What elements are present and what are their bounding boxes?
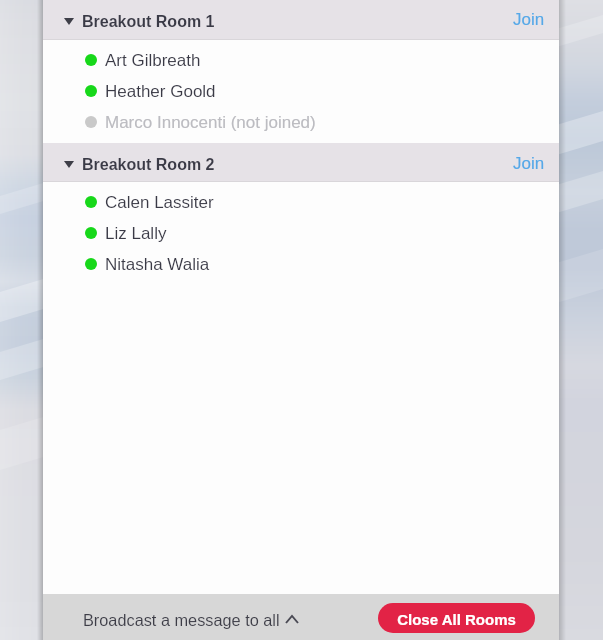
button[interactable]: Close All Rooms xyxy=(378,603,535,633)
staticText: Nitasha Walia xyxy=(105,255,210,274)
staticText: Breakout Room 1 xyxy=(82,13,215,31)
button[interactable]: Broadcast a message to all xyxy=(83,611,280,629)
button[interactable]: Join xyxy=(510,151,548,176)
button[interactable]: Nitasha Walia xyxy=(43,249,559,280)
staticText: Liz Lally xyxy=(105,224,167,243)
staticText: Close All Rooms xyxy=(397,611,516,628)
other: Collapse xyxy=(64,161,74,168)
button[interactable]: Collapse xyxy=(43,143,559,182)
button[interactable]: Calen Lassiter xyxy=(43,187,559,218)
staticText: Join xyxy=(513,154,545,173)
staticText: Heather Goold xyxy=(105,82,216,101)
button[interactable]: Liz Lally xyxy=(43,218,559,249)
staticText: Marco Innocenti (not joined) xyxy=(105,113,316,132)
staticText: Join xyxy=(513,10,545,29)
staticText: Art Gilbreath xyxy=(105,51,201,70)
staticText: Breakout Room 2 xyxy=(82,156,215,174)
other: Collapse xyxy=(64,18,74,25)
button[interactable]: Marco Innocenti (not joined) xyxy=(43,107,559,138)
button[interactable]: Art Gilbreath xyxy=(43,45,559,76)
staticText: Broadcast a message to all xyxy=(83,611,280,629)
staticText: Calen Lassiter xyxy=(105,193,214,212)
button[interactable]: Join xyxy=(510,7,548,32)
button[interactable]: Heather Goold xyxy=(43,76,559,107)
button[interactable]: Collapse xyxy=(43,0,559,40)
